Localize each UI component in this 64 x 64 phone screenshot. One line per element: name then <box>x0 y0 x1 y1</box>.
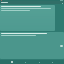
button[interactable]: Library <box>37 60 41 64</box>
button[interactable]: Home <box>10 60 14 64</box>
button[interactable]: Profile <box>50 60 54 64</box>
button[interactable] <box>0 5 55 31</box>
button[interactable]: More options <box>61 2 63 4</box>
button[interactable]: Open <box>60 45 63 47</box>
button[interactable]: Search <box>23 60 27 64</box>
button[interactable]: More options <box>0 1 64 4</box>
button[interactable]: Open <box>0 32 64 59</box>
